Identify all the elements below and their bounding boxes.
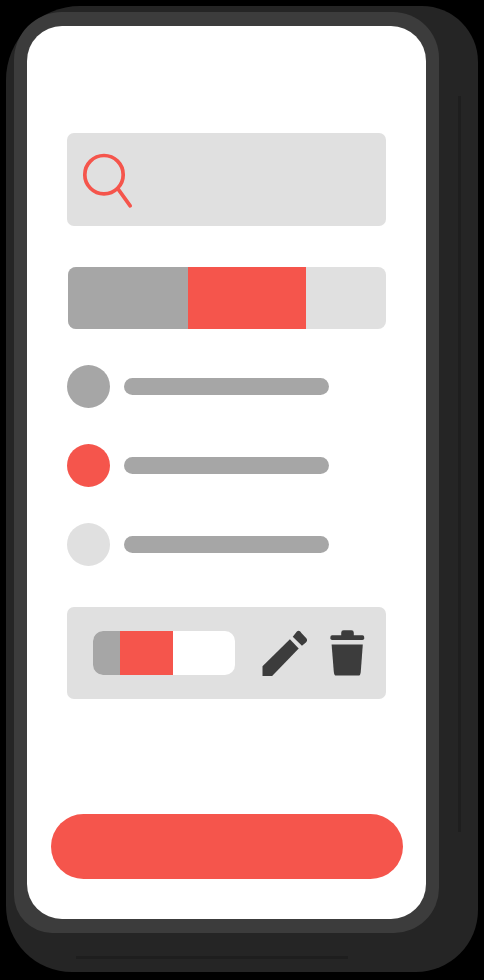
button[interactable]: List item xyxy=(67,365,356,408)
button[interactable]: Progress xyxy=(68,267,386,329)
button[interactable]: Search xyxy=(67,133,386,226)
button[interactable]: Delete xyxy=(330,630,365,676)
button[interactable]: Toggle xyxy=(93,631,235,675)
button[interactable]: Edit xyxy=(262,631,307,676)
button[interactable]: Continue xyxy=(51,814,403,879)
button[interactable]: List item xyxy=(67,523,356,566)
button[interactable]: List item xyxy=(67,444,356,487)
